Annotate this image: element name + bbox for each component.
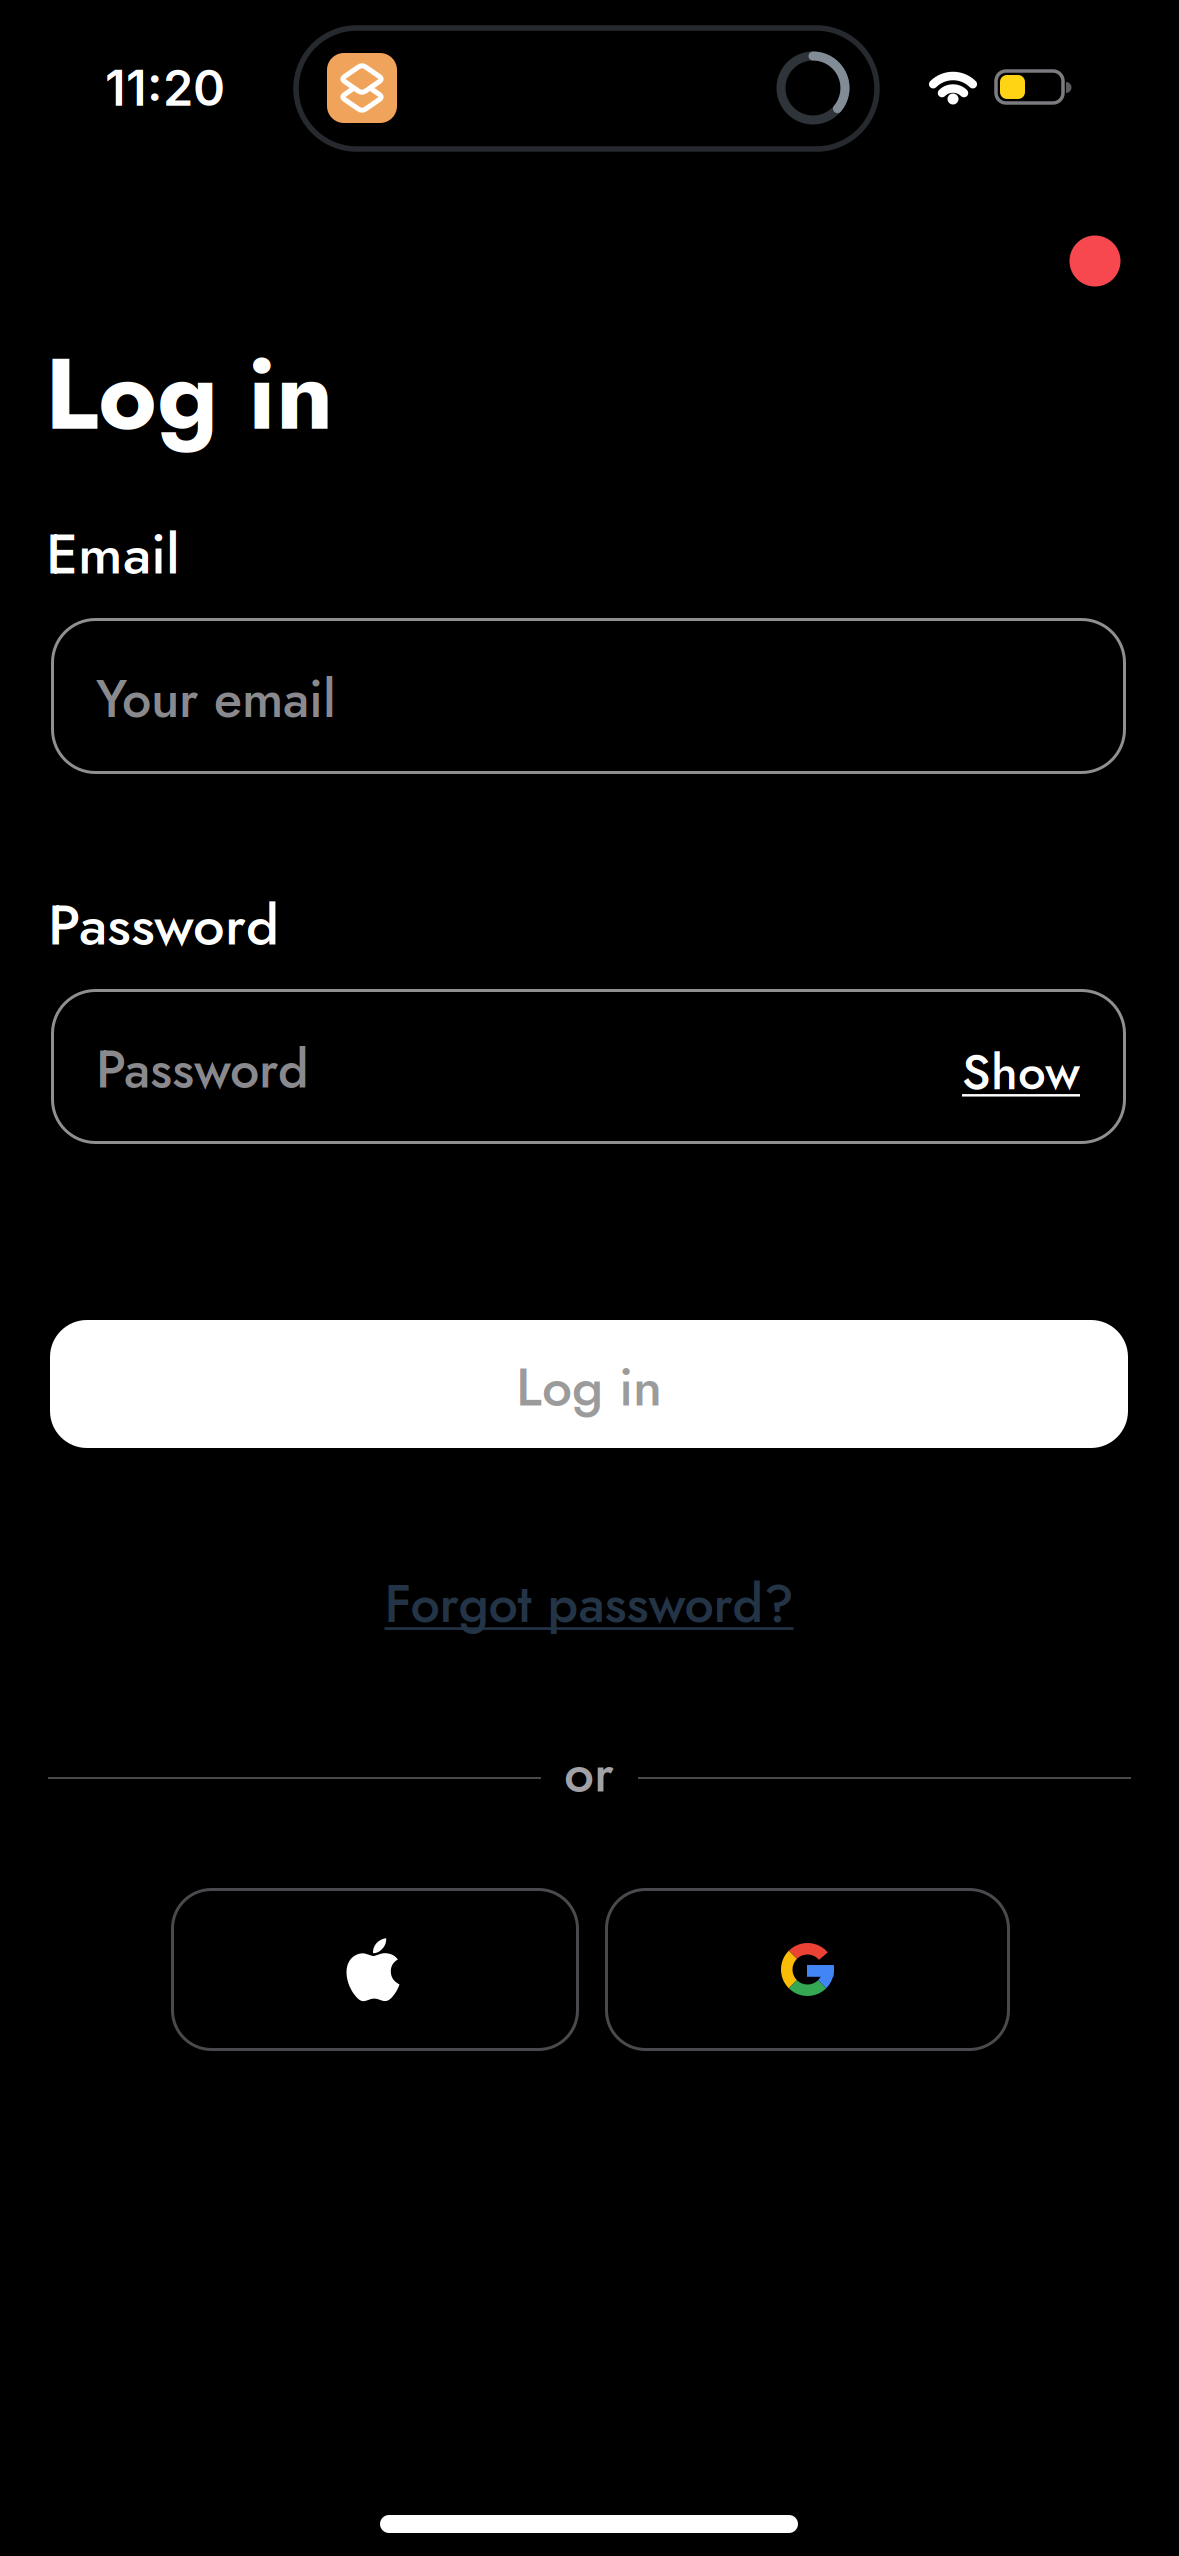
button[interactable]: Forgot password? [384, 1566, 793, 1641]
staticText: Show [962, 1036, 1080, 1108]
button[interactable]: Your email [51, 618, 1126, 774]
staticText: or [564, 1734, 614, 1812]
button[interactable]: Show [962, 1036, 1080, 1108]
staticText: Password [48, 884, 279, 965]
staticText: Log in [45, 322, 334, 466]
staticText: Forgot password? [384, 1566, 793, 1641]
staticText: Log in [516, 1348, 662, 1426]
staticText: Password [96, 1032, 309, 1107]
staticText: Your email [96, 661, 336, 736]
button[interactable]: Sign in with Apple [171, 1888, 579, 2051]
staticText: 11:20 [105, 59, 225, 117]
button[interactable]: Log in [50, 1320, 1128, 1448]
button[interactable]: Password [51, 989, 1126, 1144]
button[interactable]: Sign in with Google [605, 1888, 1010, 2051]
staticText: Email [46, 513, 180, 594]
